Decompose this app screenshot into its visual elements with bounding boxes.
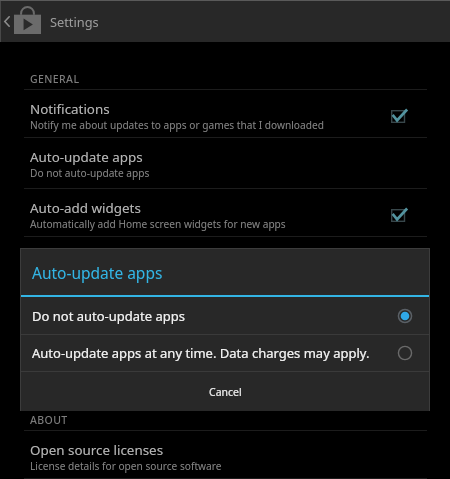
button[interactable]: Notifications: [0, 90, 450, 138]
staticText: Open source licenses: [30, 441, 164, 459]
button[interactable]: Auto-update apps at any time. Data charg…: [21, 335, 429, 371]
staticText: Cancel: [209, 385, 242, 399]
button[interactable]: Do not auto-update apps: [21, 297, 429, 334]
staticText: GENERAL: [30, 72, 80, 86]
button[interactable]: Cancel: [21, 372, 429, 411]
button[interactable]: Auto-update apps: [0, 138, 450, 189]
staticText: Automatically add Home screen widgets fo…: [30, 217, 286, 231]
staticText: Notify me about updates to apps or games…: [30, 118, 324, 132]
staticText: License details for open source software: [30, 459, 222, 473]
staticText: Notifications: [30, 100, 110, 118]
button[interactable]: Toggle setting: [384, 101, 414, 127]
button[interactable]: Navigate up to Play Store: [0, 0, 44, 42]
staticText: Auto-update apps: [30, 148, 143, 166]
button[interactable]: Auto-add widgets: [0, 189, 450, 237]
staticText: ABOUT: [30, 413, 68, 427]
button[interactable]: Toggle setting: [384, 200, 414, 226]
button[interactable]: Open source licenses: [0, 431, 450, 479]
staticText: Auto-update apps: [32, 262, 163, 283]
staticText: Do not auto-update apps: [30, 166, 150, 180]
staticText: Do not auto-update apps: [32, 307, 398, 325]
staticText: Auto-add widgets: [30, 199, 141, 217]
staticText: Auto-update apps at any time. Data charg…: [32, 344, 398, 362]
staticText: Settings: [50, 13, 99, 30]
